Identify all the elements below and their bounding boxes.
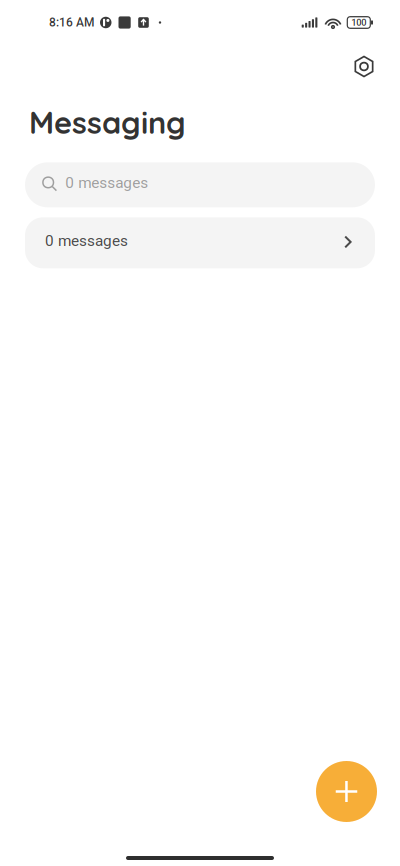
button[interactable]: 0 messages	[25, 162, 375, 207]
staticText: 8:16 AM	[49, 15, 94, 30]
button[interactable]: New message	[316, 761, 377, 822]
staticText: 100	[351, 17, 366, 28]
staticText: Messaging	[29, 103, 186, 141]
staticText: 0 messages	[45, 232, 128, 250]
button[interactable]: Settings	[343, 45, 385, 87]
staticText: 0 messages	[65, 174, 148, 192]
button[interactable]: 0 messages	[25, 217, 375, 268]
